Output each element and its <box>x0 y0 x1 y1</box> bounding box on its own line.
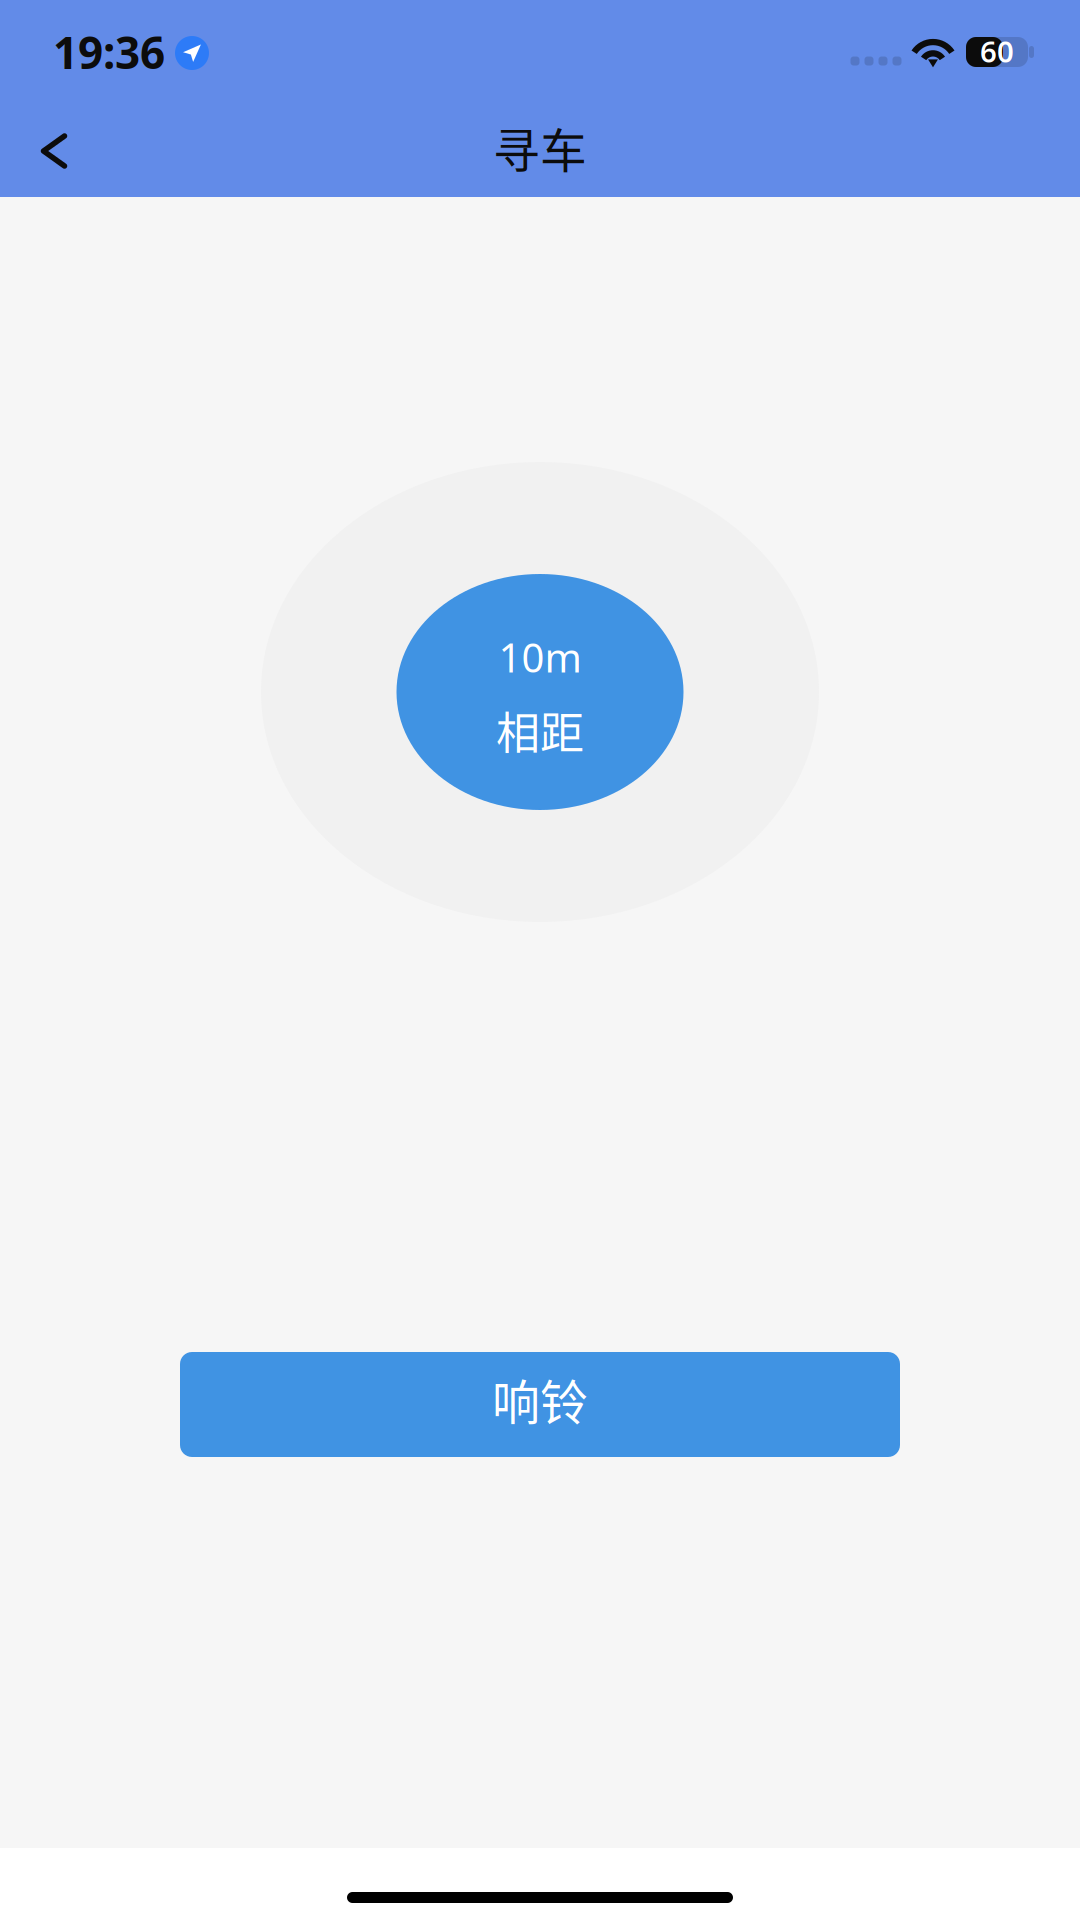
button[interactable]: 响铃 <box>180 1352 900 1457</box>
staticText: 10m <box>498 630 581 683</box>
staticText: 19:36 <box>53 23 165 81</box>
button[interactable]: Back <box>0 98 112 197</box>
staticText: 60 <box>980 31 1014 70</box>
staticText: 寻车 <box>493 114 587 181</box>
staticText: 相距 <box>496 698 584 762</box>
staticText: 响铃 <box>492 1364 588 1434</box>
